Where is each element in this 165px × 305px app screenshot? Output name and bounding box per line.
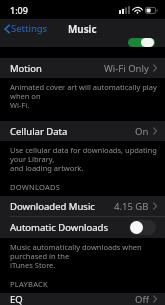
button[interactable]: Automatic Downloads bbox=[0, 217, 165, 238]
staticText: Cellular Data bbox=[10, 125, 68, 138]
staticText: 1:09 bbox=[10, 4, 28, 16]
button[interactable]: Motion bbox=[0, 58, 165, 78]
staticText: On bbox=[135, 125, 149, 138]
staticText: Wi-Fi Only bbox=[104, 62, 149, 75]
staticText: Music bbox=[68, 22, 97, 36]
staticText: EQ bbox=[10, 293, 23, 305]
button[interactable]: Cellular Data bbox=[0, 121, 165, 141]
staticText: Settings bbox=[11, 22, 48, 35]
staticText: Motion bbox=[10, 62, 42, 75]
staticText: Downloaded Music bbox=[10, 200, 95, 213]
staticText: Off bbox=[135, 293, 149, 305]
button[interactable]: EQ bbox=[0, 293, 165, 305]
staticText: 4.15 GB bbox=[114, 200, 149, 213]
staticText: Automatic Downloads bbox=[10, 221, 108, 234]
button[interactable]: Settings bbox=[0, 19, 54, 38]
staticText: Music automatically downloads when purch… bbox=[10, 242, 157, 271]
button[interactable]: Downloaded Music bbox=[0, 196, 165, 216]
staticText: DOWNLOADS bbox=[10, 182, 61, 192]
button[interactable]: Toggle setting bbox=[128, 38, 155, 47]
staticText: PLAYBACK bbox=[10, 279, 48, 289]
staticText: Use cellular data for downloads, updatin… bbox=[10, 145, 157, 174]
staticText: Animated cover art will automatically pl… bbox=[10, 82, 157, 111]
